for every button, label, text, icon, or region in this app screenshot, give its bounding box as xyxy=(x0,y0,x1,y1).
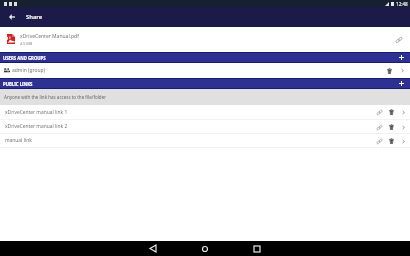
button[interactable]: Unshare xyxy=(383,64,396,77)
button[interactable]: Copy link xyxy=(373,106,385,118)
button[interactable]: Home xyxy=(195,241,215,256)
button[interactable]: xDriveCenter manual link 1 xyxy=(0,105,410,119)
staticText: admin (group) xyxy=(12,67,46,74)
button[interactable]: Link details xyxy=(397,106,409,118)
button[interactable]: Recent apps xyxy=(247,241,267,256)
staticText: xDriveCenter manual link 2 xyxy=(5,123,68,130)
button[interactable]: Link details xyxy=(397,121,409,133)
button[interactable]: Delete link xyxy=(385,121,397,133)
button[interactable]: Share link xyxy=(392,33,406,47)
button[interactable]: Copy link xyxy=(373,121,385,133)
button[interactable]: Delete link xyxy=(385,106,397,118)
button[interactable]: Share details xyxy=(396,64,409,77)
button[interactable]: Add xyxy=(397,53,406,62)
staticText: Anyone with the link has access to the f… xyxy=(4,94,107,100)
button[interactable]: Navigate up xyxy=(0,7,23,27)
button[interactable]: manual link xyxy=(0,134,410,147)
staticText: manual link xyxy=(5,137,32,144)
staticText: 12:48 xyxy=(396,1,408,7)
button[interactable]: USERS AND GROUPS xyxy=(0,52,410,63)
staticText: xDriveCenter manual link 1 xyxy=(5,109,68,116)
button[interactable]: admin (group) xyxy=(0,63,410,78)
staticText: PUBLIC LINKS xyxy=(3,80,33,88)
staticText: xDriveCenter Manual.pdf xyxy=(20,33,79,40)
button[interactable]: Copy link xyxy=(373,135,385,147)
button[interactable]: Add xyxy=(397,79,406,88)
button[interactable]: xDriveCenter Manual.pdf xyxy=(0,27,410,52)
staticText: 4.5 MB xyxy=(20,41,33,46)
button[interactable]: xDriveCenter manual link 2 xyxy=(0,120,410,133)
button[interactable]: Link details xyxy=(397,135,409,147)
staticText: USERS AND GROUPS xyxy=(3,54,46,62)
button[interactable]: Back xyxy=(143,241,163,256)
button[interactable]: Delete link xyxy=(385,135,397,147)
staticText: Share xyxy=(26,13,43,21)
button[interactable]: PUBLIC LINKS xyxy=(0,78,410,89)
